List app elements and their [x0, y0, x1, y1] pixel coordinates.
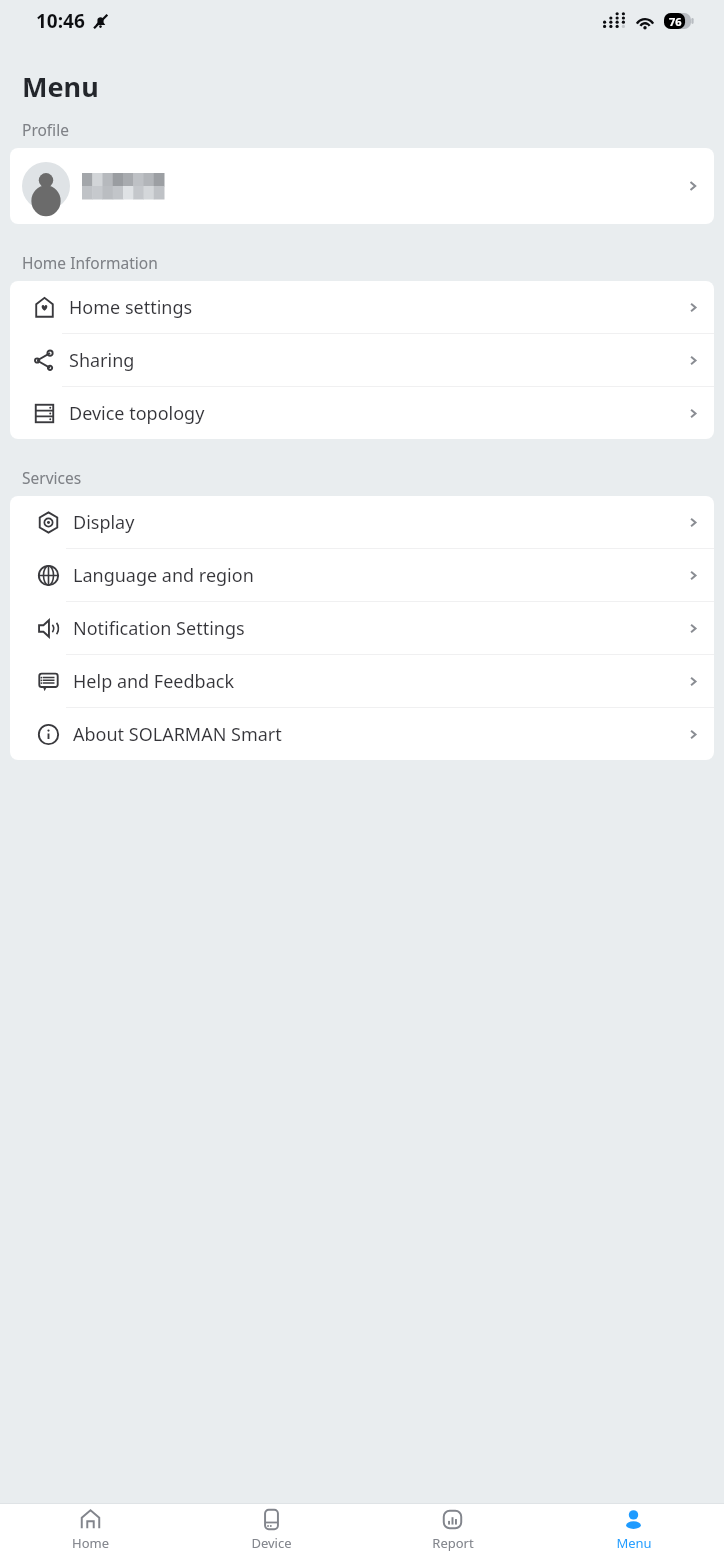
button[interactable]: Language and region — [10, 549, 714, 601]
staticText: Display — [73, 510, 135, 535]
staticText: Report — [432, 1534, 474, 1552]
button[interactable]: Menu — [543, 1504, 724, 1556]
staticText: Device topology — [69, 401, 205, 426]
button[interactable]: Help and Feedback — [10, 655, 714, 707]
staticText: Home settings — [69, 295, 193, 320]
staticText: Home — [72, 1534, 109, 1552]
button[interactable]: Device — [181, 1504, 362, 1556]
button[interactable]: Home — [0, 1504, 181, 1556]
staticText: Services — [22, 467, 82, 488]
button[interactable]: Device topology — [10, 387, 714, 439]
staticText: Menu — [616, 1534, 652, 1552]
button[interactable]: Sharing — [10, 334, 714, 386]
staticText: Menu — [22, 68, 99, 105]
button[interactable]: Display — [10, 496, 714, 548]
button[interactable] — [10, 148, 714, 224]
staticText: Language and region — [73, 563, 254, 588]
button[interactable]: Report — [362, 1504, 543, 1556]
staticText: Help and Feedback — [73, 669, 234, 694]
staticText: 76 — [669, 14, 682, 29]
staticText: Notification Settings — [73, 616, 245, 641]
button[interactable]: About SOLARMAN Smart — [10, 708, 714, 760]
staticText: Home Information — [22, 252, 158, 273]
button[interactable]: Notification Settings — [10, 602, 714, 654]
staticText: Sharing — [69, 348, 135, 373]
button[interactable]: Home settings — [10, 281, 714, 333]
staticText: About SOLARMAN Smart — [73, 722, 282, 747]
staticText: Profile — [22, 119, 69, 140]
staticText: 10:46 — [36, 8, 85, 34]
staticText: Device — [251, 1534, 292, 1552]
